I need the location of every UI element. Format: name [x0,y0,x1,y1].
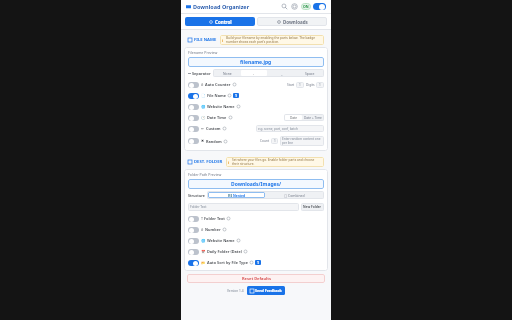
staticText: Number [205,227,221,232]
button[interactable]: Toggle off [184,112,328,123]
other: Info [229,116,232,119]
button[interactable]: Toggle off [188,126,199,132]
button[interactable]: Toggle off [184,123,328,134]
staticText: 📄 [201,94,206,98]
button[interactable]: 1 [271,138,278,144]
staticText: Count [260,139,270,143]
staticText: Control [215,19,232,25]
button[interactable]: Folder Text [188,203,299,211]
staticText: □ Combined [284,193,305,198]
staticText: 1 [235,93,237,98]
staticText: File Name [207,93,226,98]
staticText: 1 [319,83,321,87]
button[interactable]: Toggle off [184,101,328,112]
button[interactable]: Enter random content one per line [280,136,324,146]
other: Info [233,83,236,86]
staticText: Build your filename by enabling the part… [226,36,322,44]
other: Info [237,105,240,108]
staticText: Filename Preview [188,50,218,55]
button[interactable]: Toggle on [184,257,328,268]
staticText: Enter random content one per line [282,137,322,145]
button[interactable]: 1 [316,82,324,88]
other: Info [250,261,253,264]
button[interactable]: 1 [296,82,304,88]
button[interactable]: ⤴ Nested [208,192,265,198]
button[interactable]: Toggle off [184,246,328,257]
button[interactable]: e.g. scene, part, conf, batch [256,125,324,132]
staticText: Folder Path Preview [188,172,222,177]
button[interactable]: Toggle off [188,227,199,233]
button[interactable]: ON [303,4,309,9]
staticText: Folder Text [190,205,207,209]
staticText: Folder Text [204,216,225,221]
button[interactable]: Toggle off [188,104,199,110]
staticText: # [201,82,204,87]
button[interactable]: Toggle on [188,260,199,266]
staticText: Auto Sort by File Type [207,260,248,265]
staticText: ON [303,4,309,9]
button[interactable]: Settings [291,3,298,10]
staticText: FILE NAME [194,37,217,43]
staticText: Custom [206,126,221,131]
staticText: Start [287,83,295,87]
button[interactable]: Toggle off [188,249,199,255]
staticText: _ [281,71,283,76]
staticText: Downloads [283,19,308,25]
staticText: 📂 [201,261,206,265]
staticText: Daily Folder (Date) [207,249,242,254]
staticText: New Folder [303,205,322,209]
button[interactable]: Space [296,70,323,76]
other: Info [227,217,230,220]
button[interactable]: Toggle off [188,82,199,88]
button[interactable]: Toggle off [184,79,328,90]
staticText: DEST. FOLDER [194,159,223,165]
button[interactable]: Toggle on [184,90,328,101]
button[interactable]: Toggle off [188,238,199,244]
staticText: i [222,38,224,43]
staticText: - [253,71,255,76]
staticText: Version 1.4 [227,289,244,293]
button[interactable]: Toggle off [184,134,328,148]
staticText: Random [206,139,222,144]
staticText: 1 [299,83,301,87]
button[interactable]: Toggle on [188,93,199,99]
button[interactable]: Toggle off [184,224,328,235]
button[interactable]: □ Combined [266,192,323,198]
other: Info [223,127,226,130]
staticText: 1 [257,260,259,265]
button[interactable]: Toggle on [313,3,326,10]
button[interactable]: New Folder [301,203,324,211]
staticText: Digits [306,83,315,87]
staticText: Structure [188,193,205,198]
button[interactable]: Toggle off [188,138,199,144]
staticText: 1 [274,139,276,143]
button[interactable]: Control [185,17,255,26]
staticText: Date + Time [304,116,322,120]
staticText: T [201,216,203,221]
staticText: e.g. scene, part, conf, batch [258,127,298,131]
staticText: 📅 [201,250,206,254]
staticText: 🌐 [201,239,206,243]
button[interactable]: Toggle off [184,235,328,246]
staticText: ✖ [201,139,205,143]
staticText: ⤴ Nested [228,193,246,198]
staticText: Date [290,116,298,120]
staticText: Website Name [207,238,235,243]
button[interactable]: Date + Time [302,115,323,120]
button[interactable]: Toggle off [188,115,199,121]
button[interactable]: Toggle off [184,213,328,224]
button[interactable]: Search [281,3,288,10]
staticText: Download Organizer [193,3,250,10]
button[interactable]: None [214,70,240,76]
staticText: ✏ [201,127,205,131]
button[interactable]: Date [285,115,302,120]
button[interactable]: Downloads [257,17,327,26]
button[interactable]: Reset Defaults [187,274,325,283]
staticText: Website Name [207,104,235,109]
button[interactable]: Send Feedback [247,286,285,295]
staticText: Send Feedback [255,288,282,293]
button[interactable]: Toggle off [188,216,199,222]
staticText: i [228,160,230,165]
